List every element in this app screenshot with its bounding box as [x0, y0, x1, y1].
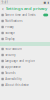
staticText: Settings and privacy — [6, 6, 47, 11]
button[interactable]: Notifications — [0, 18, 50, 24]
staticText: ‹ — [2, 5, 4, 12]
staticText: About this device — [5, 83, 29, 87]
button[interactable]: Appearance — [0, 64, 50, 70]
staticText: Sounds — [5, 71, 15, 75]
staticText: Accessibility — [5, 77, 21, 81]
staticText: Language and region — [5, 59, 35, 63]
button[interactable]: Privacy — [0, 24, 50, 30]
staticText: Privacy — [5, 25, 13, 29]
button[interactable]: Display — [0, 36, 50, 42]
staticText: Security — [5, 53, 15, 57]
button[interactable]: Back — [1, 5, 5, 11]
staticText: ■ ▮ — [44, 1, 49, 4]
staticText: Your account — [5, 47, 22, 51]
button[interactable]: Storage — [0, 30, 50, 36]
staticText: Notifications — [5, 19, 22, 23]
staticText: Display — [5, 37, 14, 41]
staticText: 9:41 — [1, 1, 8, 4]
staticText: Appearance — [5, 65, 21, 69]
button[interactable]: Your account — [0, 46, 50, 52]
button[interactable]: About this device — [0, 82, 50, 88]
button[interactable]: Screen time and limits — [0, 12, 50, 18]
staticText: Screen time and limits — [5, 13, 35, 17]
button[interactable]: Sounds — [0, 70, 50, 76]
button[interactable]: Security — [0, 52, 50, 58]
staticText: Storage — [5, 31, 15, 35]
button[interactable]: Accessibility — [0, 76, 50, 82]
button[interactable]: Language and region — [0, 58, 50, 64]
